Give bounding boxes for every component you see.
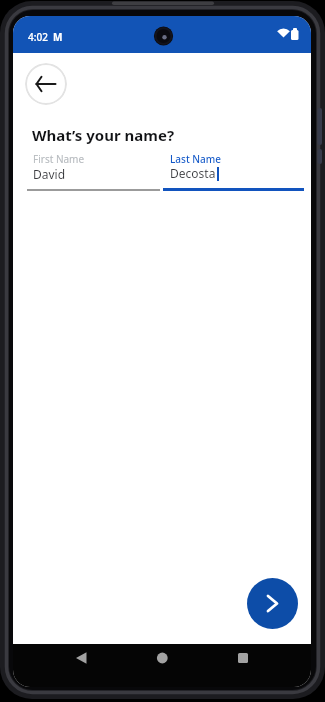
button[interactable] <box>247 578 298 629</box>
button[interactable]: Last Name <box>163 150 304 190</box>
button[interactable]: First Name <box>27 150 160 190</box>
staticText: First Name <box>33 152 85 166</box>
staticText: What’s your name? <box>32 125 175 145</box>
button[interactable] <box>13 644 113 687</box>
button[interactable] <box>113 644 212 687</box>
staticText: 4:02 <box>28 30 48 44</box>
staticText: Last Name <box>170 152 222 166</box>
button[interactable] <box>212 644 311 687</box>
staticText: Decosta <box>170 165 216 181</box>
staticText: David <box>33 166 66 182</box>
staticText: M <box>53 30 63 44</box>
button[interactable] <box>25 63 67 105</box>
